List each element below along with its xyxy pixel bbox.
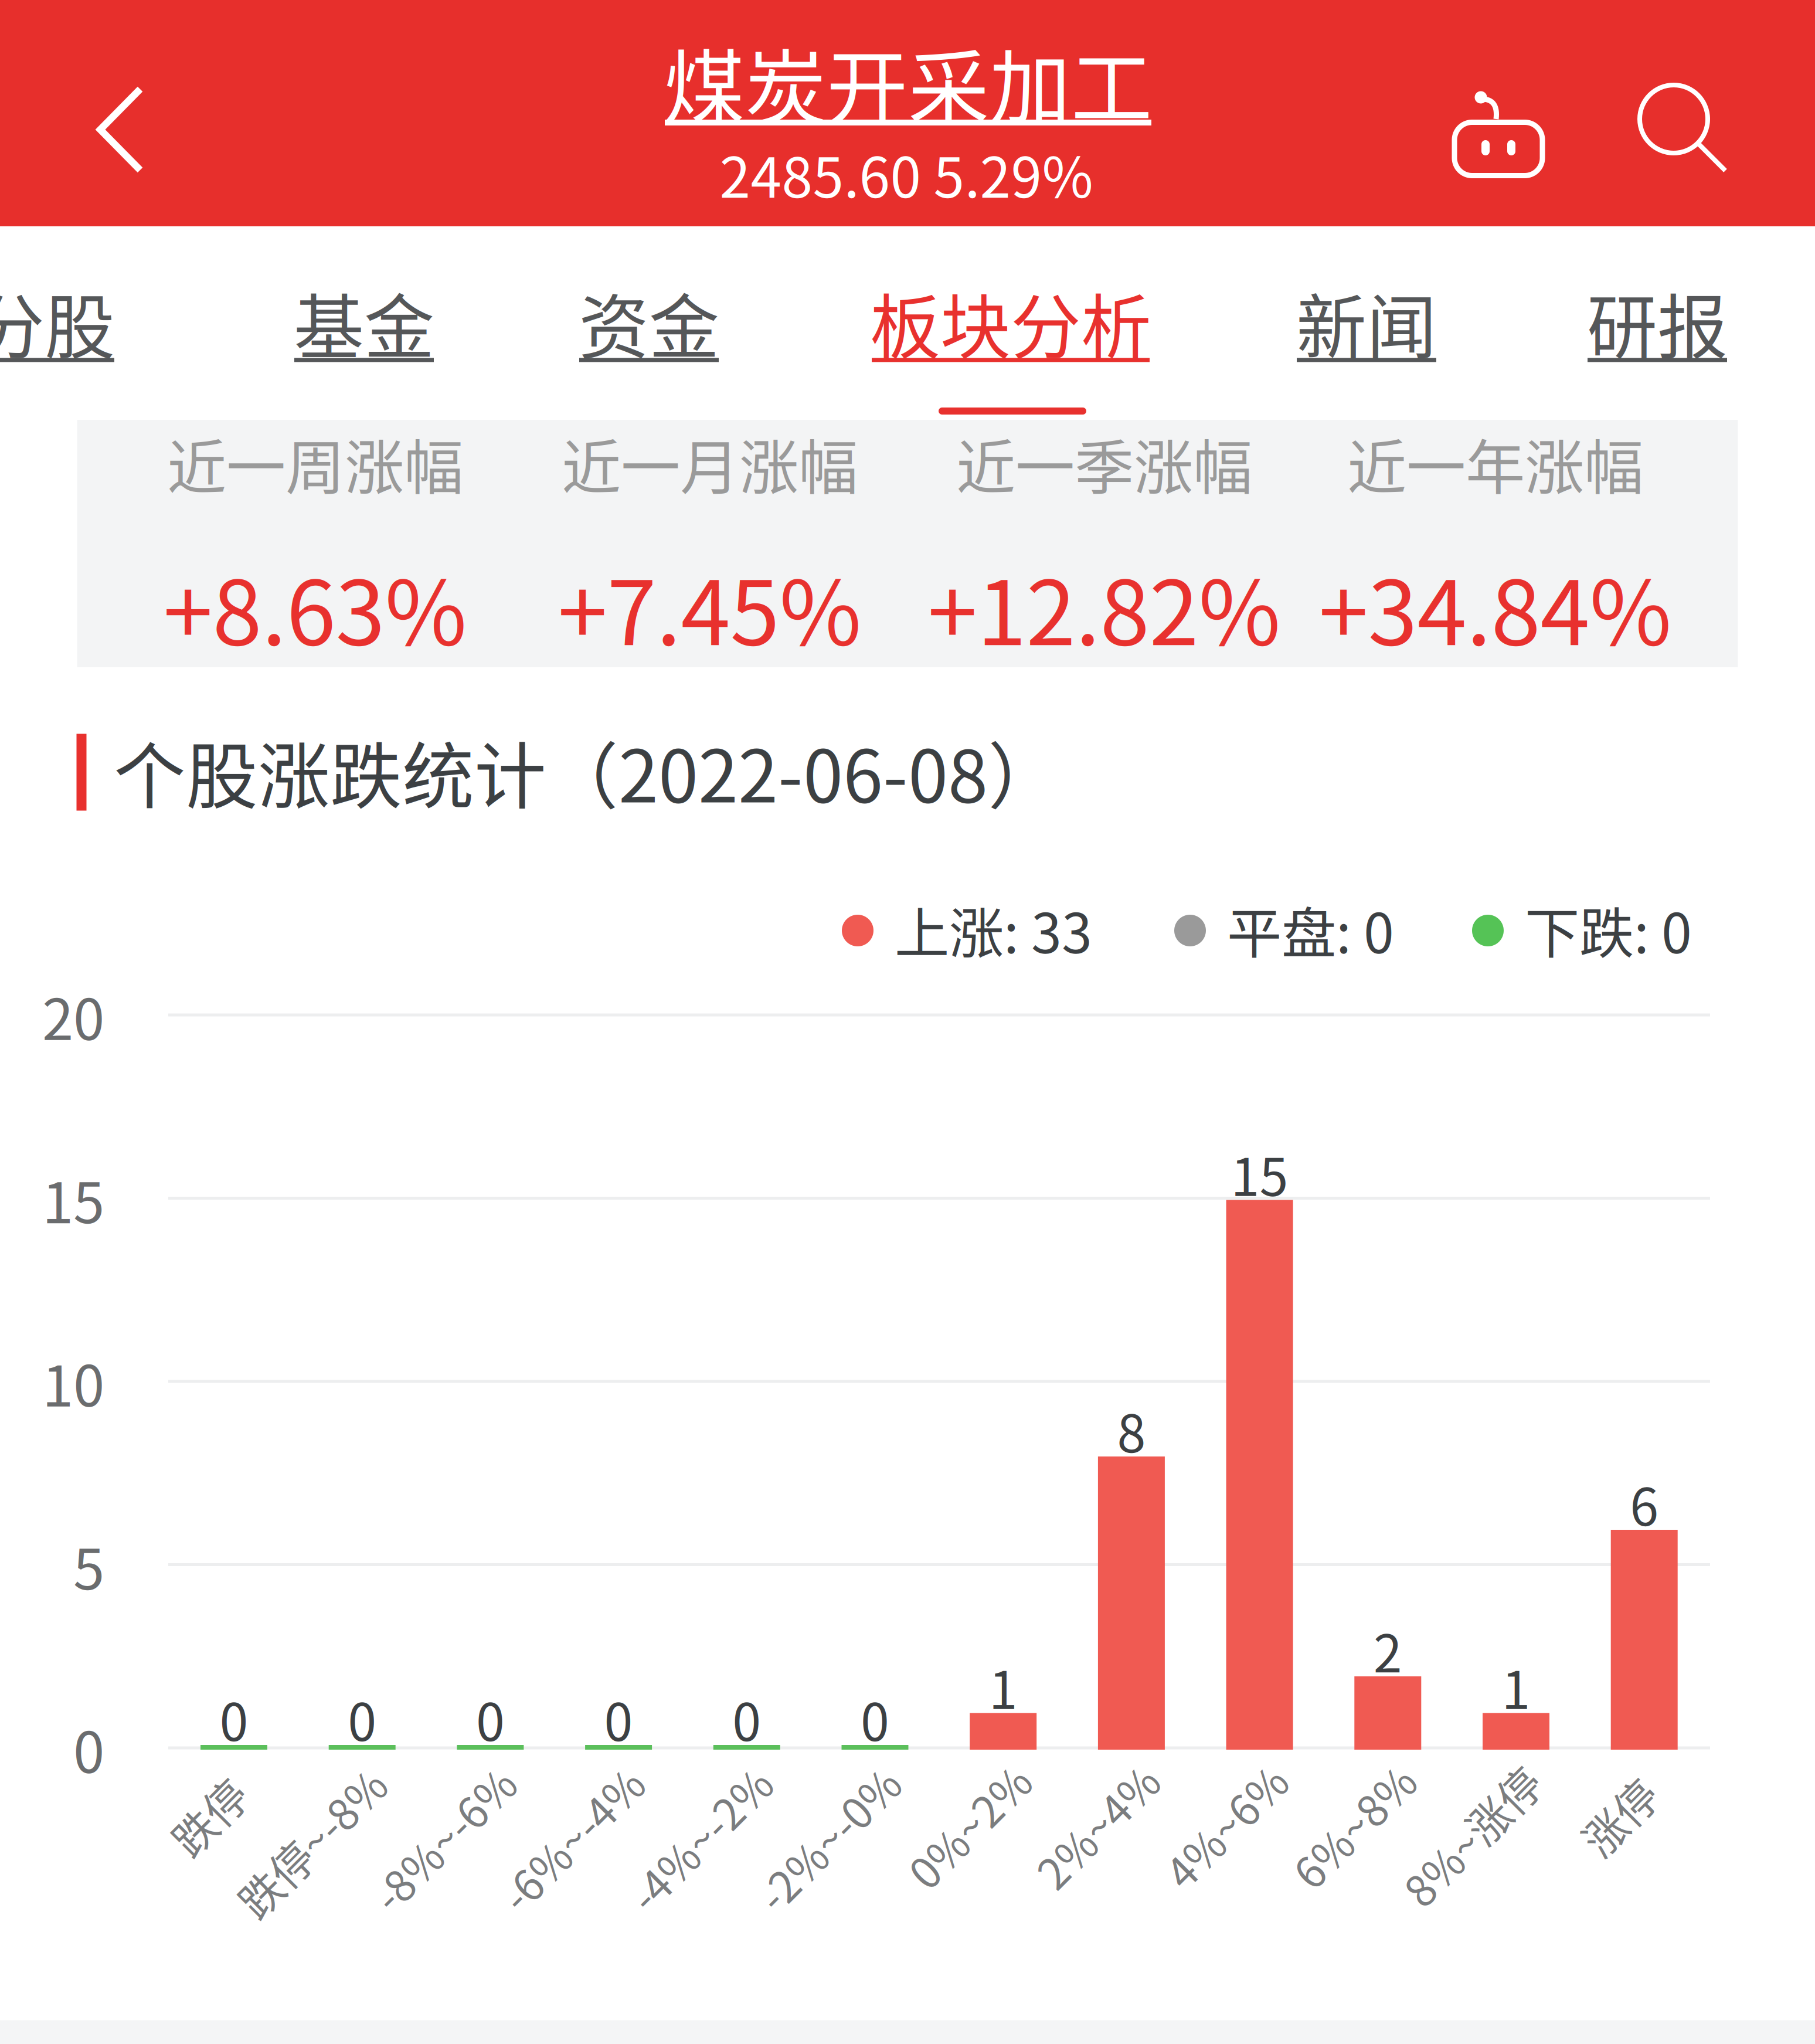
- staticText: 0: [220, 1681, 248, 1756]
- staticText: 0: [348, 1681, 376, 1756]
- staticText: 跌停~-8%: [217, 1811, 406, 1873]
- staticText: +7.45%: [558, 542, 861, 671]
- staticText: 分股: [0, 272, 115, 373]
- staticText: 4%~6%: [1149, 1794, 1301, 1857]
- staticText: 0: [604, 1681, 633, 1756]
- staticText: 板块分析: [870, 272, 1151, 373]
- button[interactable]: 基金: [294, 226, 434, 420]
- staticText: 资金: [579, 272, 719, 373]
- staticText: 上涨: 33: [895, 890, 1092, 969]
- staticText: 个股涨跌统计（2022-06-08）: [114, 719, 1060, 823]
- staticText: 2%~4%: [1021, 1794, 1173, 1857]
- staticText: 1: [989, 1649, 1018, 1724]
- staticText: 6: [1630, 1466, 1659, 1541]
- staticText: 平盘: 0: [1227, 890, 1394, 969]
- staticText: 跌停: [166, 1785, 252, 1848]
- staticText: 近一年涨幅: [1347, 420, 1643, 506]
- staticText: 近一周涨幅: [167, 420, 463, 506]
- staticText: -4%~-2%: [609, 1807, 790, 1869]
- staticText: 下跌: 0: [1525, 890, 1692, 969]
- button[interactable]: 板块分析: [872, 226, 1150, 420]
- staticText: 6%~8%: [1278, 1794, 1429, 1857]
- staticText: 0: [861, 1681, 889, 1756]
- button[interactable]: AI assistant: [1449, 77, 1548, 183]
- button[interactable]: 资金: [579, 226, 719, 420]
- button[interactable]: 研报: [1588, 226, 1727, 420]
- staticText: -2%~-0%: [737, 1807, 919, 1869]
- staticText: 0: [732, 1681, 761, 1756]
- staticText: 15: [42, 1158, 104, 1240]
- staticText: 8: [1117, 1393, 1146, 1467]
- button[interactable]: Back: [59, 68, 182, 191]
- staticText: 新闻: [1296, 272, 1437, 373]
- staticText: 10: [42, 1341, 104, 1423]
- staticText: 近一季涨幅: [956, 420, 1252, 506]
- staticText: 研报: [1587, 272, 1728, 373]
- staticText: 涨停: [1576, 1785, 1662, 1848]
- staticText: 0: [476, 1681, 505, 1756]
- staticText: 基金: [294, 272, 434, 373]
- staticText: -6%~-4%: [481, 1807, 662, 1869]
- staticText: +12.82%: [928, 542, 1281, 671]
- staticText: +8.63%: [163, 542, 467, 671]
- button[interactable]: Search: [1629, 77, 1729, 176]
- staticText: 8%~涨停: [1385, 1804, 1559, 1867]
- staticText: 1: [1502, 1649, 1530, 1724]
- button[interactable]: 分股: [0, 226, 114, 420]
- staticText: -8%~-6%: [353, 1807, 534, 1869]
- staticText: 2: [1373, 1613, 1402, 1687]
- staticText: 15: [1231, 1136, 1288, 1211]
- staticText: 20: [42, 975, 104, 1056]
- staticText: +34.84%: [1319, 542, 1672, 671]
- staticText: 2485.60 5.29%: [720, 133, 1093, 214]
- staticText: 近一月涨幅: [562, 420, 858, 506]
- staticText: 煤炭开采加工: [664, 23, 1153, 141]
- button[interactable]: 新闻: [1297, 226, 1436, 420]
- staticText: 5: [73, 1524, 104, 1606]
- staticText: 0: [73, 1708, 104, 1789]
- staticText: 0%~2%: [893, 1794, 1045, 1857]
